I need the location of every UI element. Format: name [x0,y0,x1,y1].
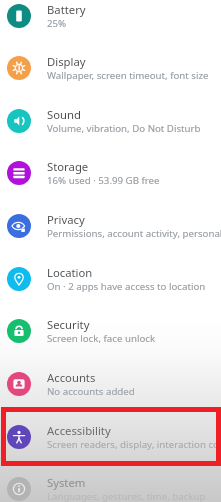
staticText: Privacy [47,212,85,227]
staticText: 16% used · 53.99 GB free [47,174,160,187]
staticText: Accounts [47,370,96,385]
staticText: Storage [47,159,89,174]
staticText: Wallpaper, screen timeout, font size [47,69,209,82]
button[interactable]: Accounts [0,357,221,410]
staticText: Screen readers, display, interaction con… [47,438,221,451]
button[interactable]: System [0,462,221,502]
staticText: 25% [47,17,67,30]
other: Accessibility highlight [1,407,221,466]
staticText: Sound [47,107,81,122]
staticText: Permissions, account activity, personal … [47,227,221,240]
staticText: Screen lock, face unlock [47,332,156,345]
staticText: Security [47,317,90,332]
button[interactable]: Privacy [0,199,221,252]
button[interactable]: Battery [0,0,221,42]
button[interactable]: Sound [0,94,221,147]
staticText: Display [47,54,86,69]
staticText: Accessibility [47,423,111,438]
staticText: Battery [47,2,86,17]
staticText: Location [47,265,93,280]
button[interactable]: Location [0,252,221,305]
button[interactable]: Security [0,304,221,357]
staticText: System [47,475,86,490]
button[interactable]: Display [0,41,221,94]
staticText: Languages, gestures, time, backup [47,490,206,502]
staticText: No accounts added [47,385,135,398]
staticText: Volume, vibration, Do Not Disturb [47,122,201,135]
button[interactable]: Storage [0,146,221,199]
button[interactable]: Accessibility [0,410,221,463]
staticText: On · 2 apps have access to location [47,280,206,293]
